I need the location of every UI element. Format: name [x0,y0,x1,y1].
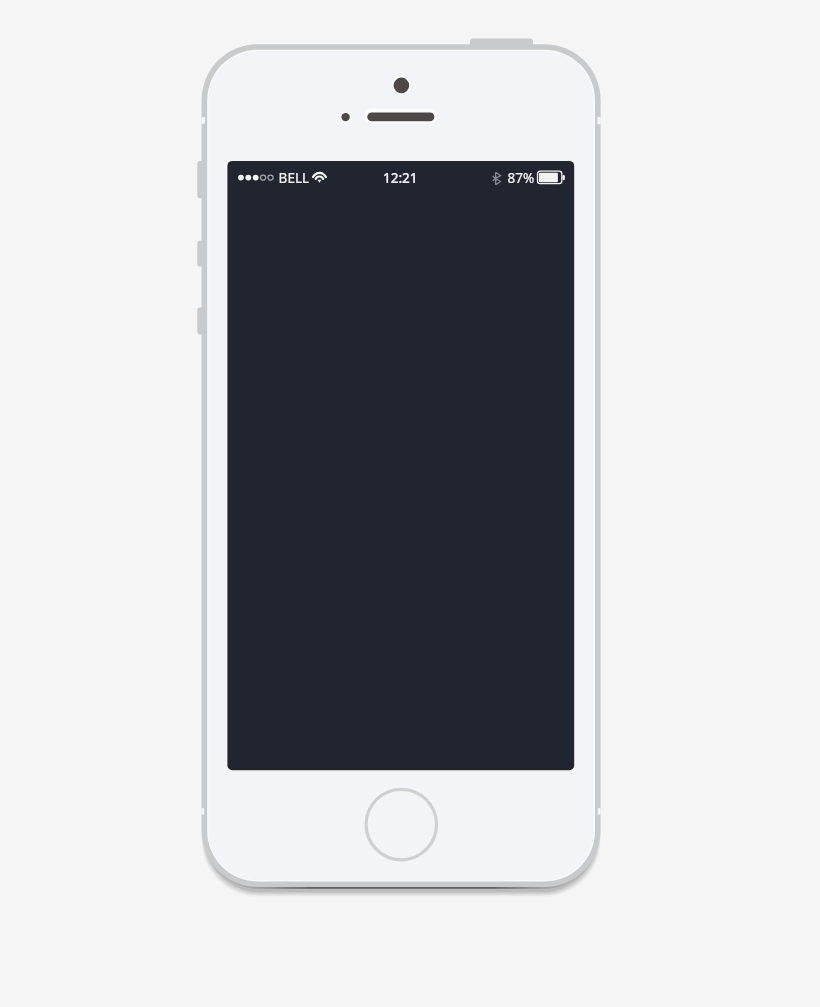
button[interactable]: Home [366,789,436,859]
button[interactable]: Silent switch [195,161,205,198]
button[interactable]: Volume up [195,241,205,267]
button[interactable]: Phone screen [227,161,574,770]
button[interactable]: Volume down [195,308,205,335]
button[interactable]: Power [470,36,533,50]
